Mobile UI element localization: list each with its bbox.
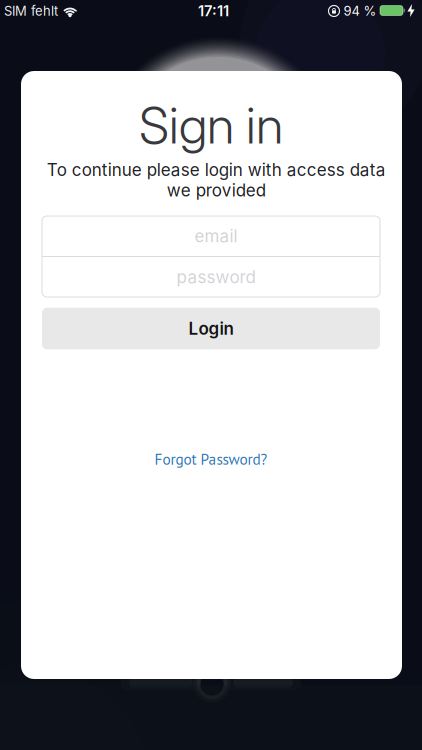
- button[interactable]: password: [48, 257, 384, 296]
- staticText: 17:11: [198, 2, 229, 20]
- button[interactable]: email: [48, 216, 384, 255]
- button[interactable]: Login: [42, 308, 380, 349]
- staticText: email: [194, 226, 237, 246]
- staticText: Sign in: [139, 94, 283, 156]
- staticText: Login: [188, 318, 233, 339]
- button[interactable]: Forgot Password?: [154, 449, 267, 469]
- staticText: Forgot Password?: [154, 449, 267, 469]
- staticText: password: [176, 267, 255, 287]
- staticText: 94 %: [343, 3, 376, 19]
- staticText: To continue please login with access dat…: [46, 159, 385, 200]
- staticText: SIM fehlt: [4, 3, 58, 19]
